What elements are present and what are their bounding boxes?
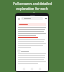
button[interactable]: [21, 17, 43, 20]
staticText: explanation for each: [16, 7, 48, 11]
staticText: Full answers and detailed: [13, 2, 52, 6]
staticText: question: [27, 12, 38, 16]
button[interactable]: Bookmark: [30, 67, 34, 71]
button[interactable]: Next: [38, 67, 42, 71]
button[interactable]: [18, 23, 46, 26]
button[interactable]: Menu: [17, 17, 20, 20]
button[interactable]: Previous: [22, 67, 26, 71]
button[interactable]: More options: [44, 17, 47, 20]
